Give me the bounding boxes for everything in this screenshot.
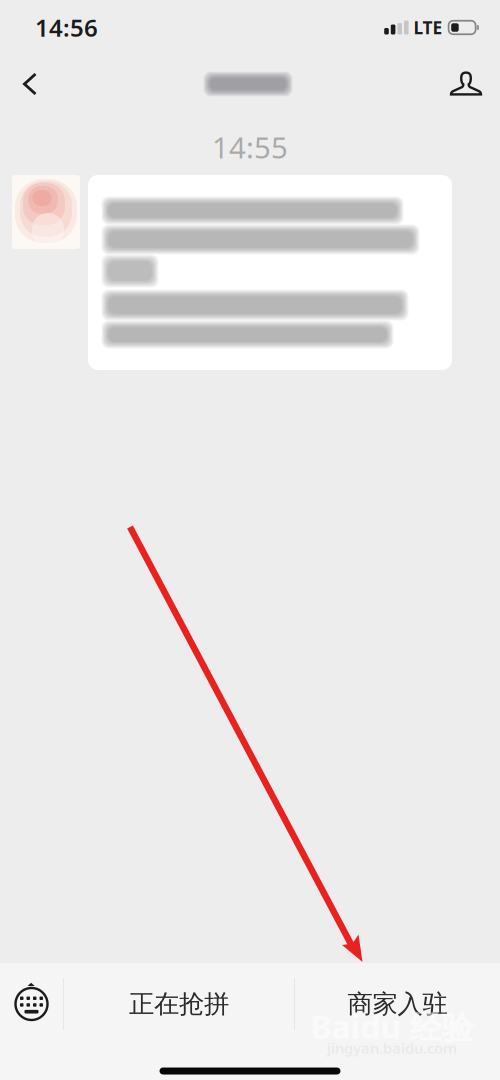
staticText: 商家入驻 <box>347 988 447 1019</box>
staticText: 14:55 <box>212 127 288 166</box>
staticText: jingyan.baidu.com <box>327 1038 457 1058</box>
button[interactable]: Contact info <box>438 55 494 113</box>
staticText: 正在抢拼 <box>129 988 229 1019</box>
button[interactable]: 正在抢拼 <box>64 963 294 1045</box>
button[interactable]: 商家入驻 <box>295 963 500 1045</box>
staticText: Baidu 经验 <box>310 1005 473 1048</box>
staticText: 14:56 <box>35 12 98 43</box>
staticText: LTE <box>414 16 443 39</box>
button[interactable]: Keyboard <box>0 963 63 1045</box>
button[interactable]: Back <box>2 55 58 113</box>
